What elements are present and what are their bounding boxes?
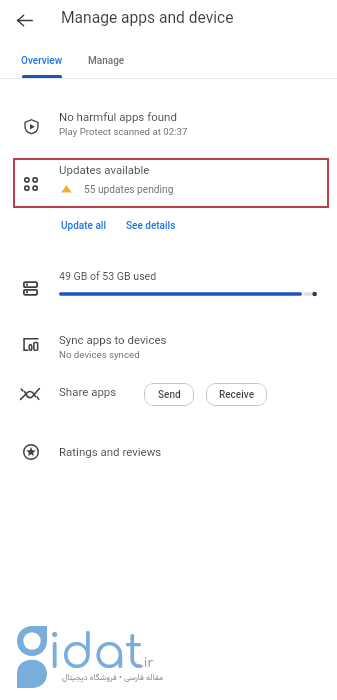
button[interactable]: Updates available — [0, 159, 337, 207]
staticText: Manage apps and device — [61, 9, 234, 27]
button[interactable]: Sync apps to devices — [0, 328, 337, 366]
staticText: Play Protect scanned at 02:37 — [59, 126, 188, 137]
staticText: مقاله فارسی • فروشگاه دیجیتال — [62, 672, 164, 685]
button[interactable]: Send — [144, 383, 194, 406]
staticText: 55 updates pending — [84, 184, 174, 196]
staticText: Ratings and reviews — [59, 445, 162, 458]
button[interactable]: 49 GB of 53 GB used — [0, 266, 337, 304]
button[interactable]: Back — [10, 6, 38, 34]
button[interactable]: No harmful apps found — [0, 104, 337, 144]
staticText: Updates available — [59, 163, 150, 176]
staticText: idat — [48, 627, 144, 678]
button[interactable]: See details — [122, 216, 180, 236]
staticText: Share apps — [59, 385, 117, 398]
staticText: Receive — [219, 389, 255, 401]
staticText: Manage — [88, 55, 125, 67]
button[interactable]: Manage — [81, 48, 131, 74]
staticText: 49 GB of 53 GB used — [59, 270, 157, 282]
staticText: No devices synced — [59, 349, 140, 360]
staticText: Update all — [61, 220, 106, 232]
button[interactable]: Receive — [206, 383, 267, 406]
staticText: .ir — [141, 656, 154, 670]
staticText: Overview — [21, 55, 63, 67]
staticText: See details — [126, 220, 176, 232]
button[interactable]: Update all — [57, 216, 110, 236]
button[interactable]: Ratings and reviews — [0, 434, 337, 466]
staticText: No harmful apps found — [59, 110, 177, 123]
staticText: Send — [158, 389, 181, 401]
staticText: Sync apps to devices — [59, 333, 167, 346]
button[interactable]: Overview — [14, 48, 70, 74]
